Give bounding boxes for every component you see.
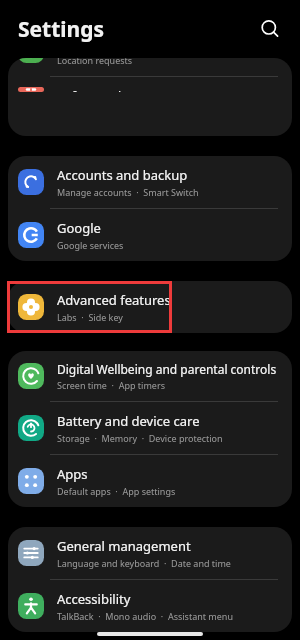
button[interactable]: Advanced features <box>8 281 292 333</box>
staticText: Apps <box>57 465 88 483</box>
staticText: Storage · Memory · Device protection <box>57 432 223 444</box>
staticText: Screen time · App timers <box>57 379 165 391</box>
staticText: Default apps · App settings <box>57 485 176 497</box>
staticText: Labs · Side key <box>57 311 123 323</box>
staticText: Digital Wellbeing and parental controls <box>57 361 277 377</box>
staticText: Location requests <box>57 58 133 66</box>
button[interactable]: Search <box>250 9 290 49</box>
staticText: Advanced features <box>57 291 171 309</box>
staticText: Accessibility <box>57 590 131 608</box>
staticText: Manage accounts · Smart Switch <box>57 186 199 198</box>
button[interactable]: Accounts and backup <box>8 156 292 208</box>
button[interactable]: Location <box>8 58 292 76</box>
staticText: Accounts and backup <box>57 166 188 184</box>
staticText: Safety and emergency <box>57 87 193 92</box>
button[interactable]: Safety and emergency <box>8 77 292 102</box>
button[interactable]: Digital Wellbeing and parental controls <box>8 351 292 401</box>
staticText: General management <box>57 537 191 555</box>
button[interactable]: Apps <box>8 455 292 507</box>
button[interactable]: Accessibility <box>8 580 292 632</box>
staticText: Settings <box>18 15 105 44</box>
staticText: Google <box>57 219 101 237</box>
button[interactable]: Battery and device care <box>8 402 292 454</box>
button[interactable]: General management <box>8 527 292 579</box>
button[interactable]: Google <box>8 209 292 261</box>
staticText: Google services <box>57 239 124 251</box>
staticText: Language and keyboard · Date and time <box>57 557 231 569</box>
staticText: TalkBack · Mono audio · Assistant menu <box>57 610 233 622</box>
staticText: Battery and device care <box>57 412 200 430</box>
